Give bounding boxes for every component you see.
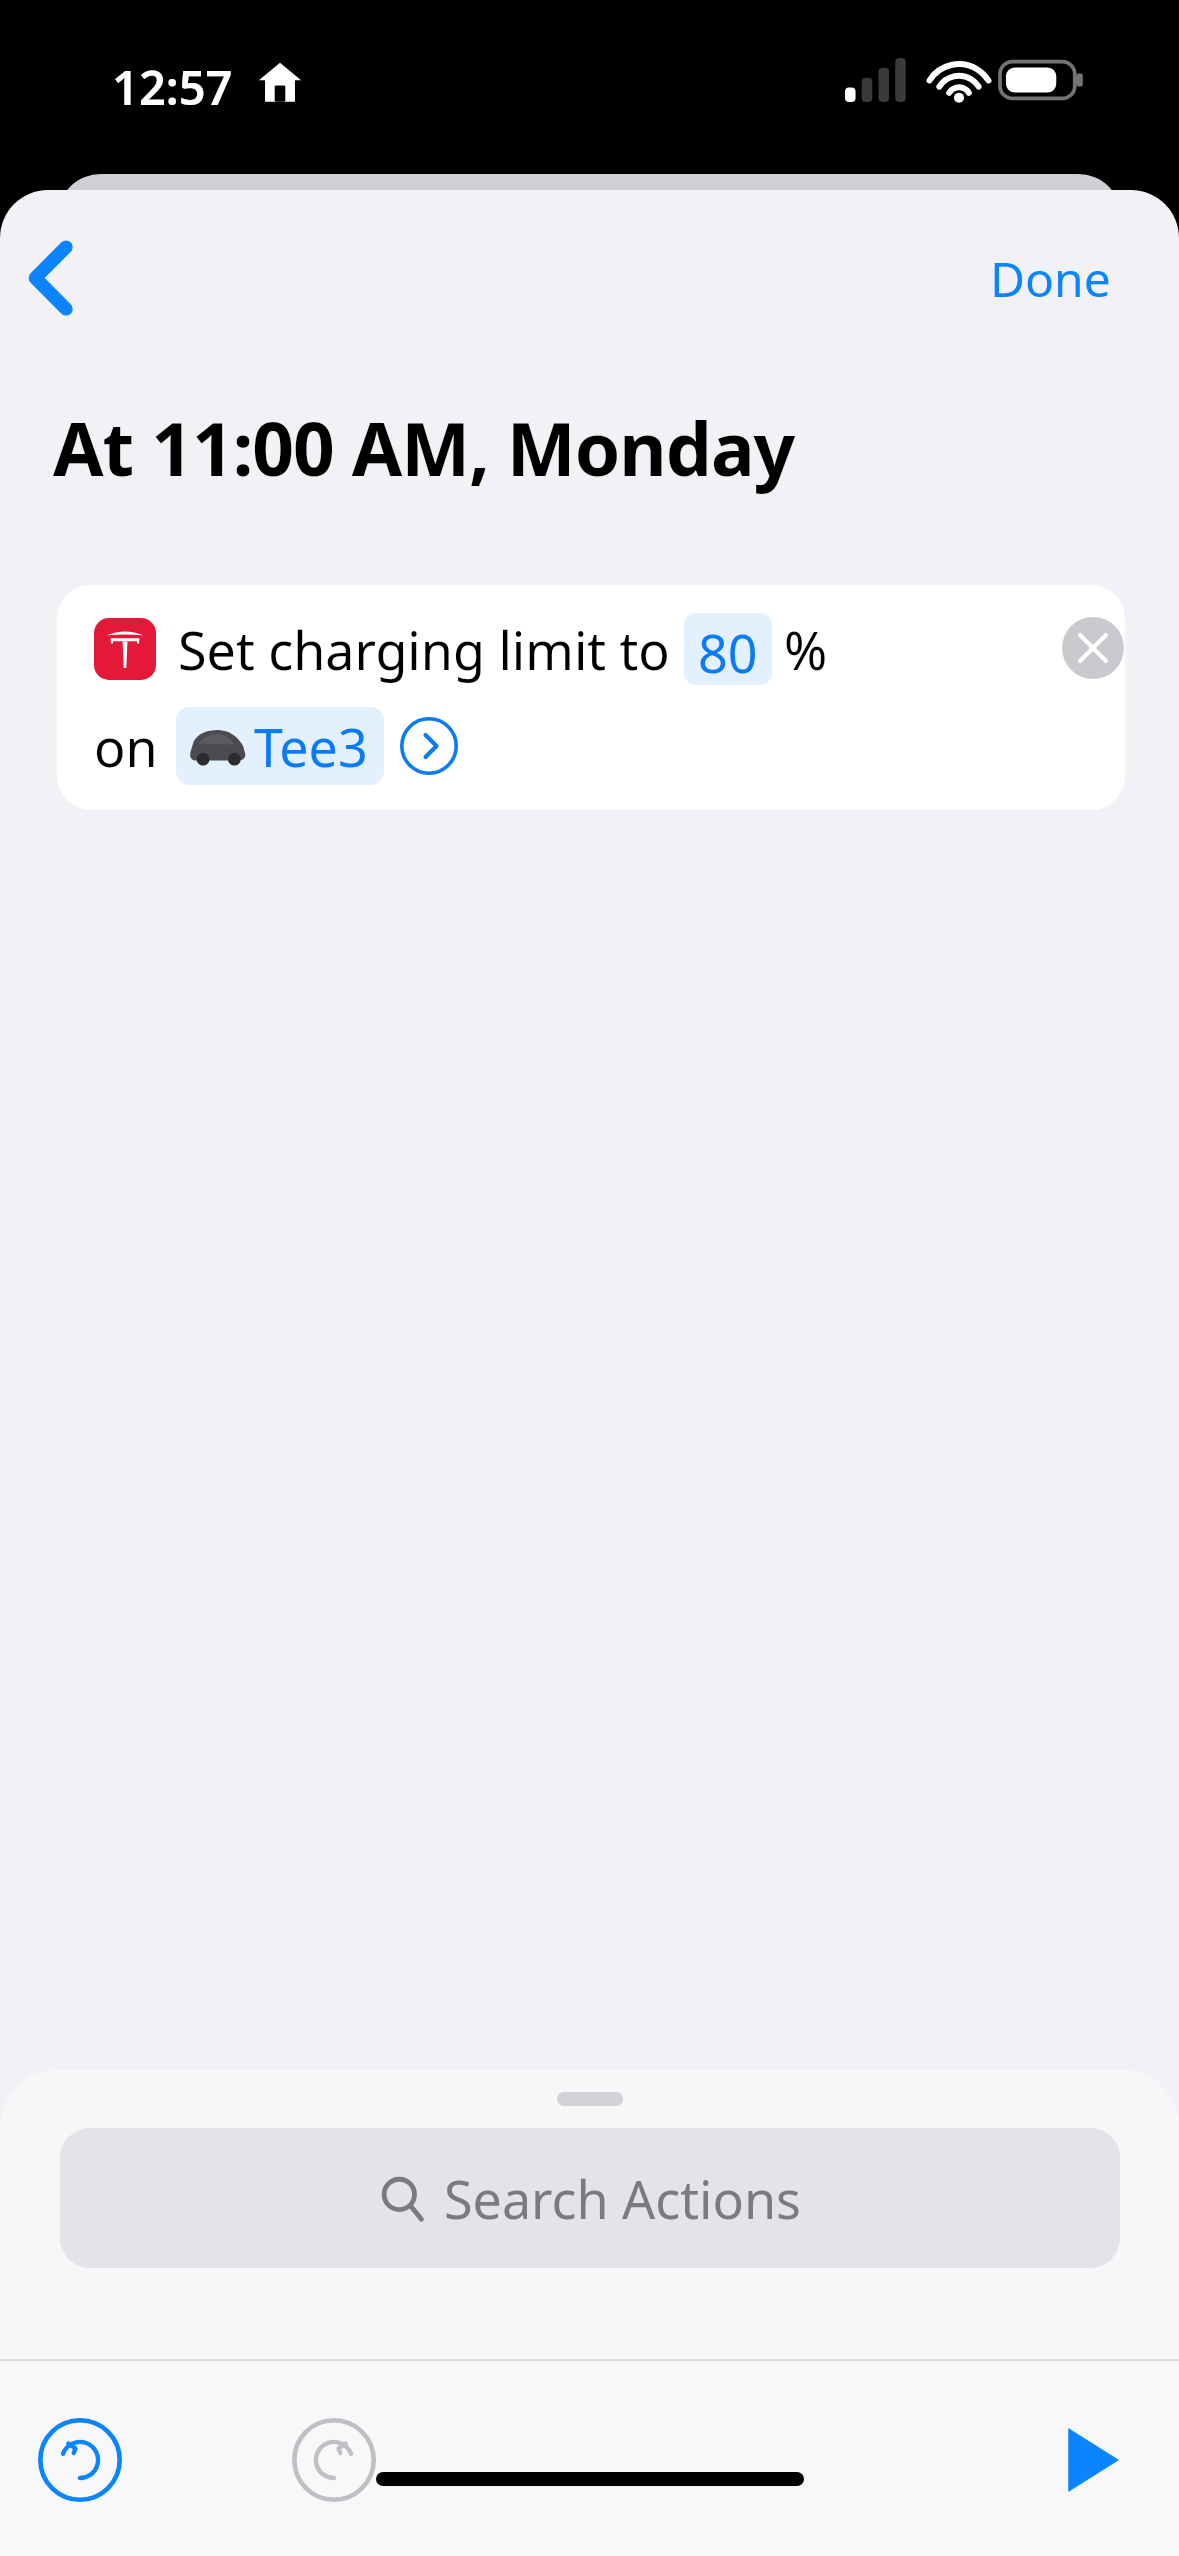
- button[interactable]: Set charging limit to: [57, 585, 1125, 810]
- button[interactable]: Remove action: [1062, 617, 1124, 679]
- staticText: Tee3: [254, 711, 368, 781]
- button[interactable]: Undo: [38, 2418, 122, 2502]
- button[interactable]: 80: [684, 613, 772, 685]
- button[interactable]: Back: [4, 230, 100, 326]
- staticText: 12:57: [112, 55, 233, 119]
- button[interactable]: Tee3: [176, 707, 384, 785]
- button[interactable]: Redo: [292, 2418, 376, 2502]
- staticText: Search Actions: [444, 2163, 801, 2234]
- staticText: %: [784, 614, 828, 685]
- button[interactable]: Run shortcut: [1048, 2416, 1136, 2504]
- staticText: 80: [698, 617, 758, 681]
- staticText: At 11:00 AM, Monday: [53, 398, 795, 497]
- button[interactable]: Search Actions: [60, 2128, 1120, 2268]
- staticText: on: [94, 711, 158, 782]
- staticText: Done: [990, 246, 1111, 311]
- button[interactable]: Show more: [400, 717, 458, 775]
- button[interactable]: Done: [990, 228, 1150, 328]
- staticText: Set charging limit to: [178, 614, 670, 685]
